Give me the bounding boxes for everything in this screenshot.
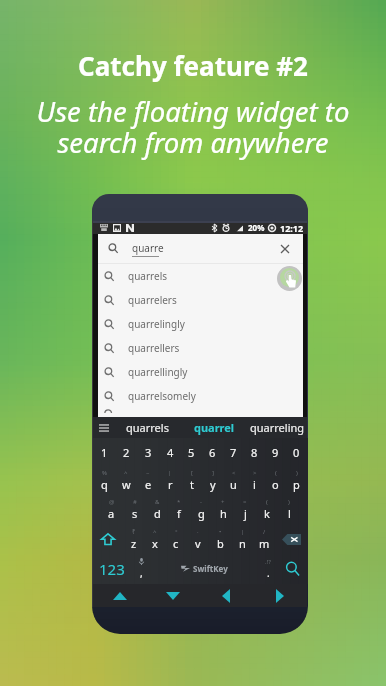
button[interactable]: 0 (286, 438, 307, 467)
button[interactable]: & (146, 496, 168, 525)
button[interactable]: 8 (244, 438, 265, 467)
staticText: y (210, 477, 216, 492)
button[interactable]: - (190, 496, 212, 525)
staticText: ~ (146, 469, 150, 477)
button[interactable]: Keyboard menu (94, 417, 114, 438)
button[interactable]: Search (279, 554, 307, 583)
staticText: @ (109, 498, 115, 506)
button[interactable]: [ (181, 467, 202, 496)
staticText: SwiftKey (193, 563, 228, 574)
button[interactable]: 3 (137, 438, 159, 467)
button[interactable]: quarre (98, 234, 303, 263)
button[interactable]: ₹ (123, 525, 144, 554)
staticText: 0 (293, 445, 300, 460)
button[interactable]: ° (165, 525, 187, 554)
staticText: 6 (209, 445, 216, 460)
staticText: r (168, 477, 173, 492)
button[interactable]: quarrels (98, 264, 303, 288)
staticText: ^ (124, 469, 128, 477)
button[interactable]: 2 (115, 438, 137, 467)
staticText: • (219, 528, 222, 536)
button[interactable]: ^ (115, 467, 137, 496)
button[interactable]: < (223, 467, 244, 496)
staticText: 1 (101, 445, 108, 460)
button[interactable]: 1 (93, 438, 115, 467)
button[interactable]: quarrellers (98, 336, 303, 360)
staticText: = (243, 498, 247, 506)
staticText: [ (191, 469, 193, 477)
button[interactable]: Up (93, 584, 146, 607)
button[interactable]: quarrels (114, 417, 181, 438)
button[interactable]: quarrelsomely (98, 384, 303, 408)
button[interactable]: ^ (144, 525, 165, 554)
button[interactable]: % (93, 467, 115, 496)
button[interactable]: 7 (223, 438, 244, 467)
button[interactable]: 9 (265, 438, 286, 467)
staticText: v (195, 536, 201, 551)
staticText: t (190, 477, 194, 492)
button[interactable]: Right (253, 584, 307, 607)
staticText: % (102, 469, 107, 477)
staticText: ° (175, 528, 178, 536)
staticText: ] (212, 469, 214, 477)
button[interactable]: * (168, 496, 190, 525)
button[interactable]: quarrellingly (98, 360, 303, 384)
button[interactable]: Floating search widget (277, 266, 302, 291)
staticText: ( (266, 498, 268, 506)
button[interactable]: quarrel (181, 417, 248, 438)
staticText: j (244, 506, 247, 521)
staticText: ^ (153, 528, 157, 536)
staticText: quarreling (250, 420, 305, 435)
staticText: quarrel (194, 420, 235, 435)
staticText: quarrels (126, 420, 169, 435)
button[interactable]: Space (151, 554, 257, 583)
staticText: h (220, 506, 227, 521)
button[interactable]: ~ (137, 467, 159, 496)
staticText: 20% (248, 222, 265, 233)
staticText: l (288, 506, 291, 521)
staticText: i (253, 477, 256, 492)
button[interactable]: , (131, 554, 151, 583)
button[interactable]: # (123, 496, 146, 525)
button[interactable]: ( (265, 467, 286, 496)
staticText: 5 (188, 445, 195, 460)
staticText: .!? (265, 558, 271, 566)
staticText: quarre (132, 241, 164, 255)
button[interactable]: • (209, 525, 231, 554)
staticText: quarrels (128, 269, 168, 283)
button[interactable]: ] (202, 467, 223, 496)
staticText: > (253, 469, 257, 477)
staticText: 3 (145, 445, 152, 460)
button[interactable]: quarreling (248, 417, 306, 438)
button[interactable]: @ (100, 496, 123, 525)
button[interactable]: 123 (93, 554, 131, 583)
staticText: 12:12 (280, 222, 304, 234)
button[interactable]: Shift (93, 525, 123, 554)
button[interactable]: Down (146, 584, 199, 607)
button[interactable]: / (253, 525, 275, 554)
button[interactable]: > (244, 467, 265, 496)
button[interactable]: | (231, 525, 253, 554)
button[interactable]: = (234, 496, 256, 525)
button[interactable]: quarrelers (98, 288, 303, 312)
button[interactable]: 4 (159, 438, 181, 467)
staticText: - (200, 498, 202, 506)
staticText: n (239, 536, 246, 551)
staticText: + (221, 498, 225, 506)
button[interactable]: · (187, 525, 209, 554)
button[interactable]: Left (199, 584, 253, 607)
button[interactable]: ) (278, 496, 300, 525)
button[interactable]: ( (256, 496, 278, 525)
staticText: 8 (251, 445, 258, 460)
button[interactable]: Clear search (274, 238, 296, 260)
button[interactable]: ) (286, 467, 307, 496)
button[interactable]: 6 (202, 438, 223, 467)
button[interactable]: + (212, 496, 234, 525)
staticText: a (108, 506, 115, 521)
button[interactable]: Backspace (275, 525, 307, 554)
staticText: 123 (99, 559, 125, 579)
button[interactable]: .!? (257, 554, 279, 583)
button[interactable]: 5 (181, 438, 202, 467)
button[interactable]: quarrelingly (98, 312, 303, 336)
button[interactable]: | (159, 467, 181, 496)
